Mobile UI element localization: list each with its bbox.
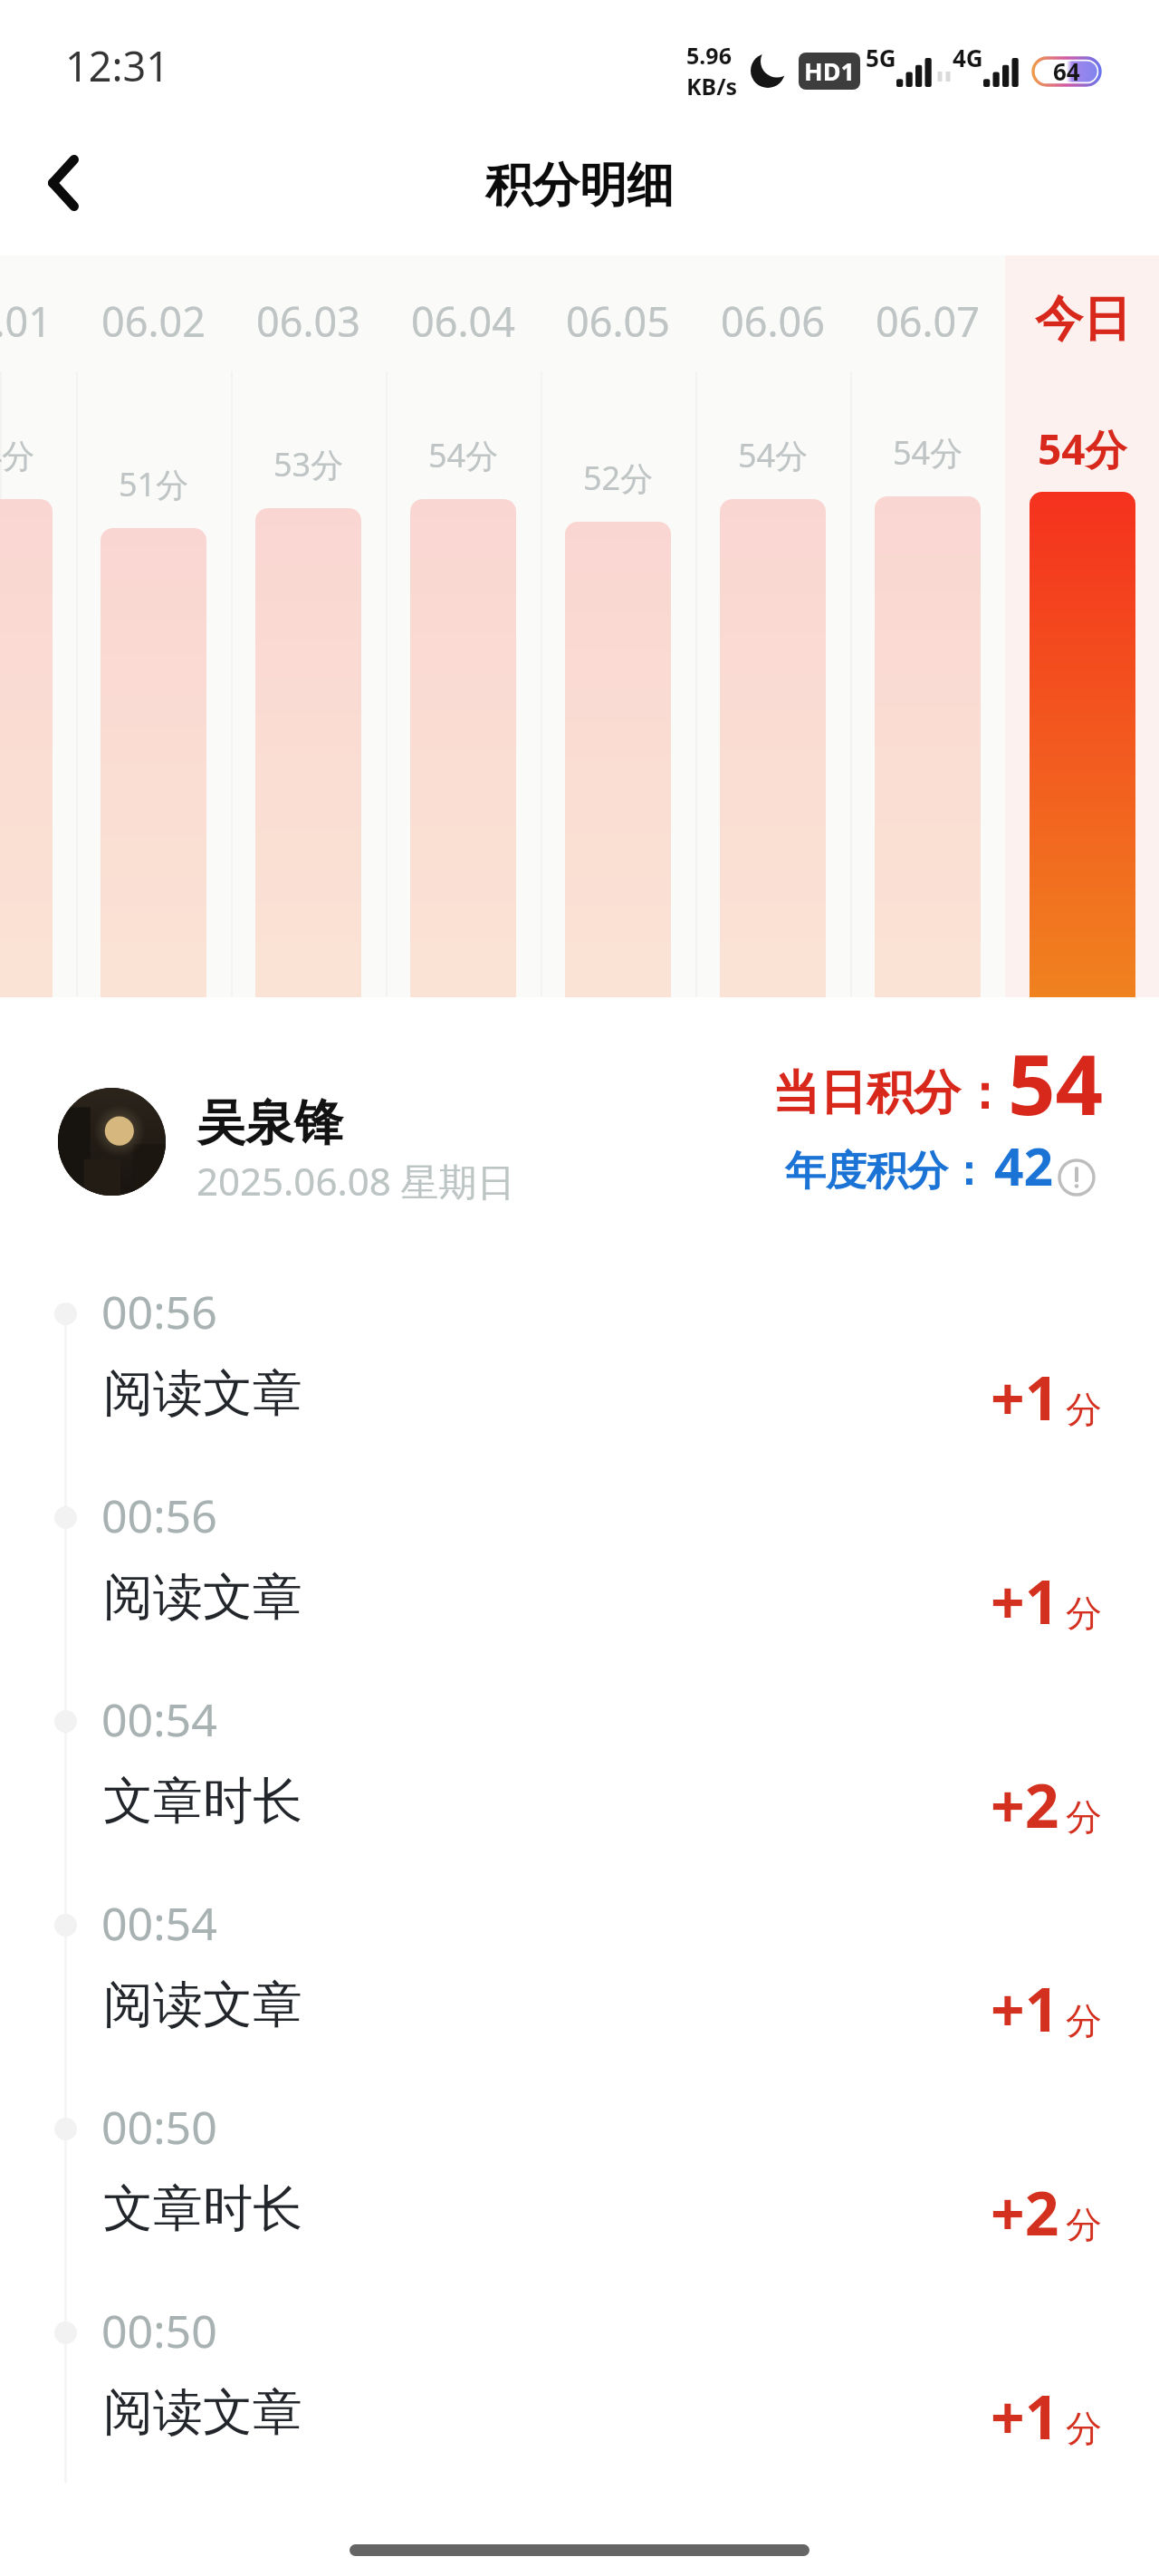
staticText: +1 <box>991 1356 1059 1437</box>
staticText: 文章时长 <box>103 1770 302 1832</box>
button[interactable]: 00:54 <box>0 1887 1159 2091</box>
staticText: 54分 <box>0 433 35 477</box>
staticText: 00:54 <box>101 1892 217 1954</box>
button[interactable]: 06.07 <box>850 255 1005 997</box>
staticText: 4G <box>953 42 983 73</box>
staticText: 分 <box>1066 2406 1102 2451</box>
staticText: 文章时长 <box>103 2177 302 2240</box>
staticText: 12:31 <box>65 38 170 93</box>
staticText: 06.05 <box>566 293 671 349</box>
staticText: 积分明细 <box>485 156 674 216</box>
button[interactable]: 06.01 <box>0 255 76 997</box>
button[interactable]: Back <box>0 115 127 251</box>
staticText: 5G <box>866 42 896 73</box>
button[interactable]: 00:56 <box>0 1479 1159 1683</box>
staticText: 阅读文章 <box>103 1362 302 1425</box>
button[interactable]: 00:50 <box>0 2294 1159 2498</box>
staticText: 06.03 <box>256 293 361 349</box>
staticText: 阅读文章 <box>103 1566 302 1629</box>
staticText: 当日积分： <box>772 1063 1008 1123</box>
staticText: 分 <box>1066 1387 1102 1432</box>
staticText: 51分 <box>119 462 189 506</box>
staticText: +2 <box>991 1764 1059 1845</box>
button[interactable]: 00:56 <box>0 1275 1159 1479</box>
button[interactable]: 00:50 <box>0 2091 1159 2294</box>
staticText: 今日 <box>1035 289 1131 350</box>
staticText: +1 <box>991 1967 1059 2049</box>
button[interactable]: 06.04 <box>386 255 541 997</box>
staticText: 53分 <box>273 442 344 486</box>
button[interactable]: 06.05 <box>541 255 695 997</box>
button[interactable]: 06.02 <box>76 255 231 997</box>
staticText: 00:54 <box>101 1688 217 1750</box>
staticText: 54 <box>1008 1026 1104 1139</box>
staticText: 分 <box>1066 1998 1102 2043</box>
button[interactable]: 00:54 <box>0 1683 1159 1887</box>
staticText: 阅读文章 <box>103 2381 302 2444</box>
staticText: 00:56 <box>101 1281 217 1342</box>
staticText: 06.02 <box>101 293 206 349</box>
staticText: 54分 <box>428 433 499 477</box>
button[interactable]: 06.03 <box>231 255 386 997</box>
staticText: 06.07 <box>876 293 981 349</box>
staticText: 00:50 <box>101 2096 217 2158</box>
staticText: 00:50 <box>101 2300 217 2361</box>
staticText: 54分 <box>738 433 809 477</box>
staticText: KB/s <box>686 71 738 101</box>
staticText: 分 <box>1066 1794 1102 1840</box>
staticText: 52分 <box>583 456 654 500</box>
staticText: 分 <box>1066 1591 1102 1636</box>
staticText: HD1 <box>804 54 855 88</box>
staticText: +1 <box>991 1560 1059 1641</box>
staticText: 阅读文章 <box>103 1974 302 2036</box>
button[interactable]: 今日 <box>1005 255 1159 997</box>
button[interactable]: 06.06 <box>695 255 850 997</box>
staticText: 06.06 <box>721 293 826 349</box>
button[interactable]: Info <box>1058 1158 1096 1197</box>
staticText: 吴泉锋 <box>196 1092 343 1154</box>
staticText: 年度积分： <box>785 1146 989 1197</box>
staticText: 54分 <box>893 430 963 475</box>
staticText: 00:56 <box>101 1485 217 1546</box>
staticText: +1 <box>991 2375 1059 2456</box>
staticText: 42 <box>994 1130 1054 1201</box>
staticText: 分 <box>1066 2202 1102 2247</box>
staticText: 06.01 <box>0 293 53 349</box>
staticText: 06.04 <box>411 293 516 349</box>
staticText: +2 <box>991 2171 1059 2253</box>
staticText: 64 <box>1053 55 1080 87</box>
staticText: 2025.06.08 星期日 <box>196 1155 515 1206</box>
staticText: 54分 <box>1038 420 1127 477</box>
staticText: 5.96 <box>686 40 732 71</box>
